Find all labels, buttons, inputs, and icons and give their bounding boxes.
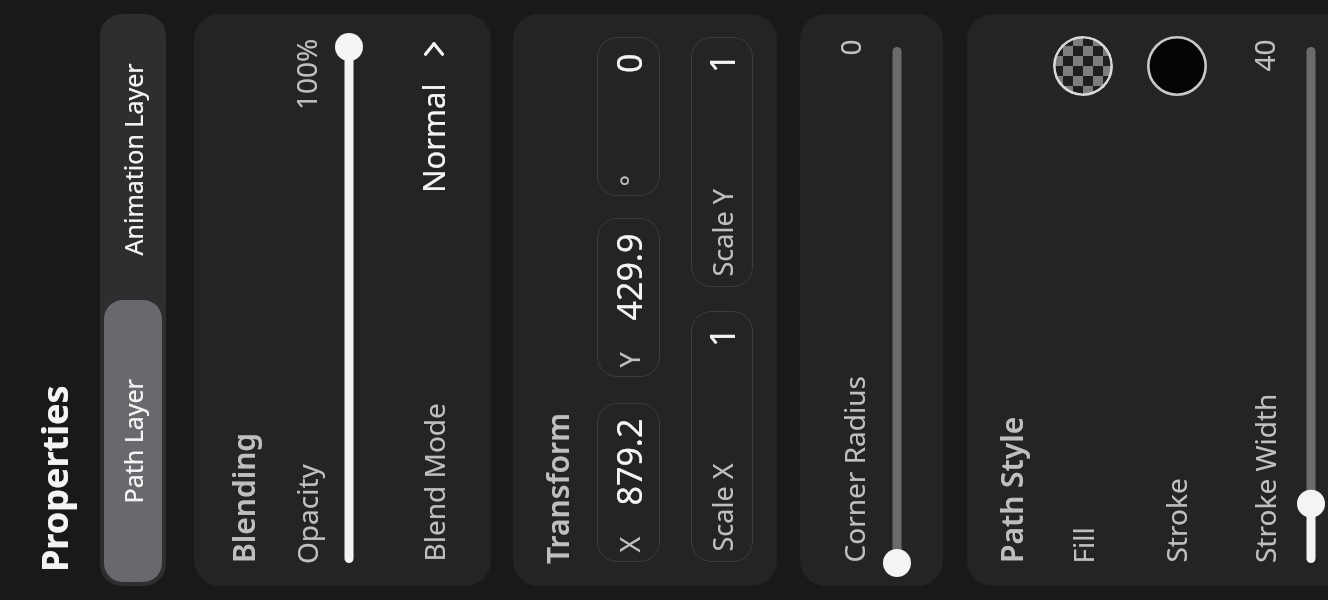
button[interactable]: Scale Y: [691, 37, 753, 287]
staticText: Blend Mode: [414, 402, 452, 561]
button[interactable]: X: [597, 403, 660, 562]
button[interactable]: °: [597, 37, 660, 196]
button[interactable]: Y: [597, 218, 660, 377]
staticText: X: [610, 536, 647, 552]
staticText: Y: [610, 351, 647, 367]
staticText: 40: [1244, 38, 1282, 71]
staticText: Fill: [1063, 526, 1101, 563]
staticText: Stroke: [1156, 477, 1194, 562]
staticText: Transform: [537, 413, 578, 564]
button[interactable]: Path Layer: [104, 300, 162, 582]
staticText: °: [610, 174, 647, 186]
staticText: Scale Y: [703, 188, 740, 276]
staticText: 0: [830, 38, 868, 55]
staticText: Path Layer: [115, 378, 149, 503]
staticText: Stroke Width: [1246, 393, 1284, 563]
staticText: 879.2: [605, 418, 651, 505]
staticText: 1: [699, 327, 745, 347]
staticText: Opacity: [288, 464, 326, 564]
staticText: Scale X: [703, 463, 740, 551]
button[interactable]: Opacity slider: [335, 33, 363, 577]
button[interactable]: Normal: [412, 28, 462, 218]
staticText: Animation Layer: [115, 62, 149, 255]
staticText: 100%: [287, 38, 325, 110]
staticText: Properties: [30, 385, 79, 572]
staticText: 0: [606, 53, 652, 73]
button[interactable]: Corner radius slider: [883, 33, 911, 577]
button[interactable]: Fill colour: [1053, 36, 1113, 96]
staticText: Blending: [223, 432, 264, 563]
staticText: 1: [699, 53, 745, 73]
staticText: Normal: [412, 83, 454, 193]
staticText: 429.9: [605, 233, 651, 320]
staticText: Path Style: [991, 416, 1032, 563]
button[interactable]: Stroke colour: [1147, 36, 1207, 96]
button[interactable]: Scale X: [691, 311, 753, 562]
button[interactable]: Stroke width slider: [1297, 33, 1325, 577]
staticText: Corner Radius: [834, 375, 872, 562]
button[interactable]: Animation Layer: [104, 18, 162, 300]
